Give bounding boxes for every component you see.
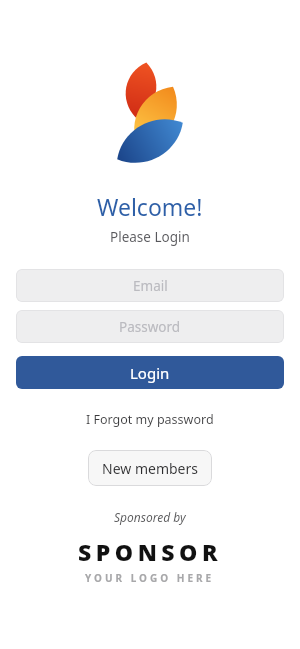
button[interactable]: Login [16, 356, 284, 389]
staticText: New members [102, 459, 198, 478]
button[interactable]: Password [16, 310, 284, 343]
button[interactable]: I Forgot my password [0, 403, 300, 435]
staticText: Please Login [110, 228, 190, 246]
staticText: Sponsored by [114, 509, 186, 525]
staticText: Email [133, 277, 168, 295]
staticText: I Forgot my password [86, 411, 214, 428]
staticText: YOUR LOGO HERE [85, 571, 215, 585]
button[interactable]: Email [16, 269, 284, 302]
button[interactable]: New members [88, 450, 212, 486]
staticText: Welcome! [97, 191, 203, 219]
staticText: Login [130, 363, 170, 383]
staticText: SPONSOR [78, 536, 222, 564]
staticText: Password [119, 318, 181, 336]
